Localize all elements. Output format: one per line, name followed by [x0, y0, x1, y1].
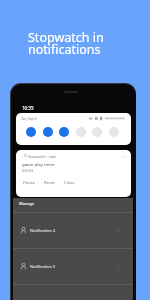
- staticText: 00:34: [22, 167, 33, 173]
- staticText: Notification 4: [30, 228, 56, 233]
- button[interactable]: Manage: [19, 201, 35, 206]
- button[interactable]: Notification 4: [13, 213, 133, 248]
- staticText: Notification 5: [30, 264, 56, 269]
- button[interactable]: Quick setting: [59, 127, 69, 137]
- button[interactable]: Reset: [44, 180, 55, 186]
- staticText: Stopwatch in notifications: [28, 29, 104, 58]
- button[interactable]: Close: [64, 180, 75, 186]
- button[interactable]: Notification 5: [13, 249, 133, 284]
- button[interactable]: Quick setting: [76, 127, 86, 137]
- button[interactable]: Quick setting: [109, 127, 119, 137]
- staticText: Stopwatch · now: [28, 154, 56, 159]
- staticText: game play timer: [22, 161, 55, 167]
- button[interactable]: Quick setting: [92, 127, 102, 137]
- button[interactable]: Quick setting: [43, 127, 53, 137]
- button[interactable]: Quick setting: [26, 127, 36, 137]
- button[interactable]: Pause: [23, 180, 35, 186]
- staticText: 10:35: [22, 105, 34, 111]
- staticText: Sat, Sep 5: [21, 116, 37, 121]
